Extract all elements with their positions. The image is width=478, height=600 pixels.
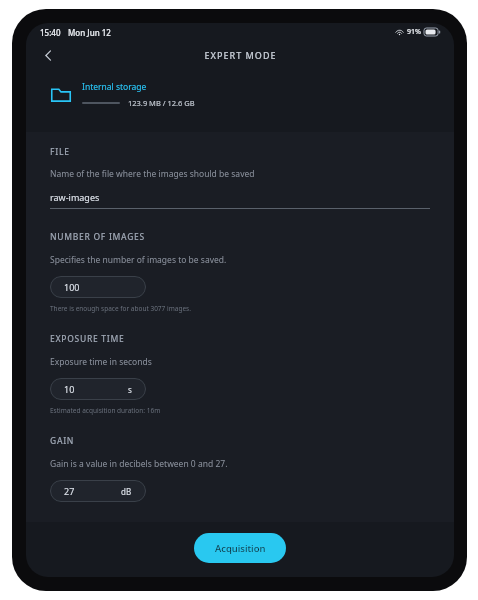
staticText: raw-images	[50, 191, 100, 203]
other: Battery	[424, 28, 440, 36]
staticText: 91%	[407, 27, 421, 37]
staticText: Gain is a value in decibels between 0 an…	[50, 458, 228, 470]
button[interactable]: 27	[50, 480, 146, 502]
staticText: FILE	[50, 146, 70, 158]
staticText: Mon Jun 12	[68, 27, 111, 38]
staticText: GAIN	[50, 435, 75, 447]
staticText: Name of the file where the images should…	[50, 168, 255, 180]
button[interactable]: raw-images	[50, 191, 430, 209]
staticText: There is enough space for about 3077 ima…	[50, 304, 191, 313]
staticText: NUMBER OF IMAGES	[50, 231, 145, 243]
staticText: 123.9 MB / 12.6 GB	[128, 98, 195, 108]
button[interactable]: 100	[50, 276, 146, 298]
staticText: s	[128, 384, 132, 395]
staticText: EXPERT MODE	[204, 49, 277, 61]
staticText: Specifies the number of images to be sav…	[50, 254, 227, 266]
staticText: Internal storage	[82, 81, 147, 93]
staticText: 27	[64, 485, 75, 497]
staticText: 10	[64, 383, 75, 395]
staticText: dB	[121, 486, 132, 497]
staticText: Exposure time in seconds	[50, 356, 152, 368]
button[interactable]: 10	[50, 378, 146, 400]
staticText: EXPOSURE TIME	[50, 333, 125, 345]
button[interactable]: Back	[34, 41, 62, 69]
staticText: Acquisition	[215, 542, 266, 555]
staticText: 15:40	[40, 27, 61, 38]
button[interactable]: Internal storage folder	[50, 81, 430, 108]
staticText: Estimated acquisition duration: 16m	[50, 406, 161, 415]
button[interactable]: Acquisition	[194, 533, 286, 563]
other: Internal storage folder	[50, 84, 72, 106]
other: Wi-Fi	[395, 28, 404, 37]
staticText: 100	[64, 281, 80, 293]
